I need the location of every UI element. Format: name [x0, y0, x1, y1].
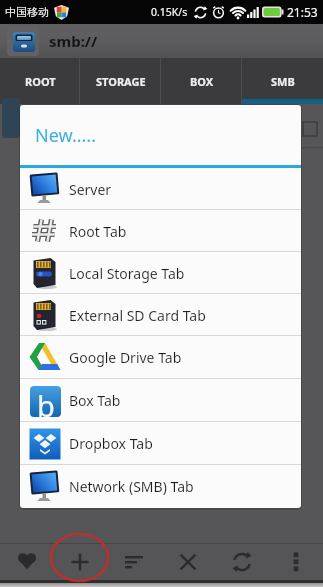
button[interactable]: SMB — [242, 58, 323, 104]
staticText: Google Drive Tab — [69, 348, 182, 367]
staticText: New..... — [35, 123, 97, 148]
staticText: Server — [69, 180, 112, 199]
button[interactable]: ROOT — [0, 58, 80, 104]
staticText: Local Storage Tab — [69, 264, 185, 283]
staticText: Network (SMB) Tab — [69, 477, 194, 496]
button[interactable]: Network (SMB) Tab — [20, 465, 301, 508]
staticText: smb:// — [49, 31, 98, 51]
staticText: 0.15K/s — [151, 5, 188, 19]
staticText: b — [37, 386, 55, 417]
button[interactable] — [7, 26, 39, 56]
button[interactable]: Google Drive Tab — [20, 336, 301, 379]
button[interactable]: Root Tab — [20, 210, 301, 252]
staticText: 21:53 — [287, 4, 318, 20]
button[interactable]: External SD Card Tab — [20, 294, 301, 336]
button[interactable] — [107, 544, 161, 580]
button[interactable]: b — [20, 379, 301, 422]
button[interactable]: Local Storage Tab — [20, 252, 301, 294]
button[interactable]: Server — [20, 168, 301, 210]
staticText: Root Tab — [69, 222, 127, 241]
staticText: 中国移动 — [5, 5, 49, 19]
staticText: BOX — [190, 74, 214, 89]
staticText: External SD Card Tab — [69, 306, 206, 325]
button[interactable]: STORAGE — [80, 58, 161, 104]
button[interactable] — [269, 544, 323, 580]
button[interactable] — [0, 544, 53, 580]
button[interactable] — [53, 544, 107, 580]
button[interactable] — [161, 544, 215, 580]
staticText: SMB — [271, 74, 295, 89]
staticText: ROOT — [25, 74, 56, 89]
staticText: Dropbox Tab — [69, 434, 153, 453]
button[interactable] — [215, 544, 269, 580]
staticText: STORAGE — [96, 74, 146, 89]
button[interactable]: BOX — [161, 58, 242, 104]
button[interactable]: Dropbox Tab — [20, 422, 301, 465]
staticText: Box Tab — [69, 391, 121, 410]
